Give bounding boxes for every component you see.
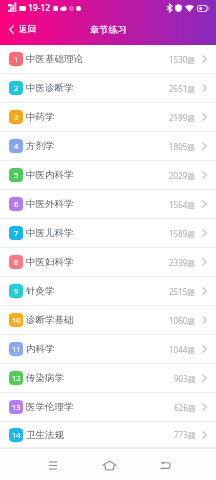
button[interactable]: 7: [0, 219, 216, 247]
staticText: 6: [14, 199, 19, 209]
staticText: 2651题: [169, 83, 196, 94]
staticText: 中药学: [26, 111, 55, 123]
staticText: 2339题: [169, 257, 196, 268]
button[interactable]: 14: [0, 422, 216, 447]
button[interactable]: Back: [149, 453, 181, 477]
staticText: 2199题: [169, 112, 196, 123]
staticText: 1530题: [169, 54, 196, 65]
staticText: 医学伦理学: [26, 401, 74, 413]
staticText: 诊断学基础: [26, 314, 74, 326]
button[interactable]: 1: [0, 45, 216, 73]
button[interactable]: 11: [0, 335, 216, 363]
staticText: 章节练习: [90, 24, 127, 36]
staticText: 方剂学: [26, 140, 55, 152]
button[interactable]: 9: [0, 277, 216, 305]
staticText: 12: [12, 373, 21, 383]
button[interactable]: 3: [0, 103, 216, 131]
staticText: 4: [14, 141, 19, 151]
staticText: 1589题: [169, 228, 196, 239]
staticText: 2029题: [169, 170, 196, 181]
staticText: 中医外科学: [26, 198, 74, 210]
staticText: 内科学: [26, 343, 55, 355]
button[interactable]: 8: [0, 248, 216, 276]
staticText: 626题: [174, 402, 196, 413]
staticText: 773题: [174, 429, 196, 440]
button[interactable]: Home: [93, 453, 125, 477]
button[interactable]: Recent apps: [37, 453, 69, 477]
button[interactable]: 5: [0, 161, 216, 189]
staticText: 返回: [19, 24, 36, 35]
staticText: 14: [12, 430, 21, 440]
staticText: 13: [12, 402, 21, 412]
button[interactable]: 10: [0, 306, 216, 334]
staticText: 1: [14, 54, 19, 64]
staticText: 8: [14, 257, 19, 267]
staticText: 中医儿科学: [26, 227, 74, 239]
staticText: 1564题: [169, 199, 196, 210]
staticText: 5: [14, 170, 19, 180]
button[interactable]: 返回: [0, 19, 44, 40]
staticText: 传染病学: [26, 372, 64, 384]
staticText: 10: [12, 315, 21, 325]
staticText: 中医基础理论: [26, 53, 83, 65]
staticText: 中医妇科学: [26, 256, 74, 268]
button[interactable]: 12: [0, 364, 216, 392]
button[interactable]: 6: [0, 190, 216, 218]
staticText: 中医内科学: [26, 169, 74, 181]
staticText: 1044题: [169, 344, 196, 355]
button[interactable]: 13: [0, 393, 216, 421]
staticText: 11: [12, 344, 21, 354]
staticText: 3: [14, 112, 19, 122]
staticText: 7: [14, 228, 19, 238]
staticText: 1060题: [169, 315, 196, 326]
staticText: 1805题: [169, 141, 196, 152]
staticText: 2: [14, 83, 19, 93]
staticText: 19-12: [28, 2, 51, 14]
staticText: 9: [14, 286, 19, 296]
staticText: 2515题: [169, 286, 196, 297]
staticText: 卫生法规: [26, 429, 64, 441]
staticText: 903题: [174, 373, 196, 384]
button[interactable]: 4: [0, 132, 216, 160]
staticText: 针灸学: [26, 285, 55, 297]
button[interactable]: 2: [0, 74, 216, 102]
staticText: 中医诊断学: [26, 82, 74, 94]
